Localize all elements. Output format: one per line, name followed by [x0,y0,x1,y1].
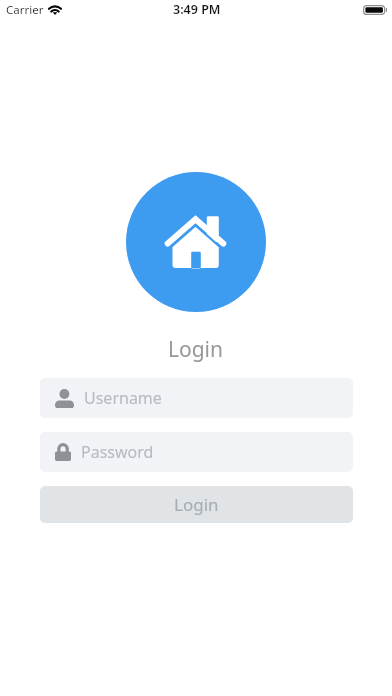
staticText: Login [174,493,219,516]
staticText: Username [84,387,162,409]
other: Wi-Fi [48,5,62,15]
button[interactable]: Login [40,486,353,523]
other: Battery [363,5,387,15]
staticText: Carrier [6,2,44,18]
button[interactable]: Username [40,378,353,418]
staticText: Password [81,441,154,463]
button[interactable]: Password [40,432,353,472]
staticText: 3:49 PM [173,1,221,18]
staticText: Login [168,335,224,364]
